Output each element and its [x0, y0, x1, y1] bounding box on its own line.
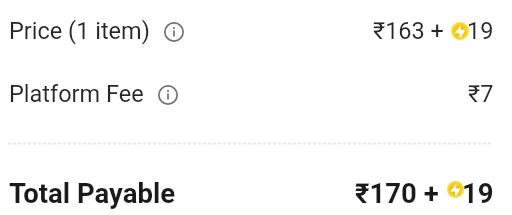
staticText: Price (1 item)	[9, 17, 150, 45]
other: More information	[164, 22, 184, 42]
button[interactable]: Platform Fee	[0, 62, 512, 126]
staticText: ₹163 +	[373, 17, 444, 45]
staticText: 19	[462, 177, 494, 209]
staticText: Platform Fee	[9, 80, 144, 108]
other: More information	[158, 85, 178, 105]
button[interactable]: Price (1 item)	[0, 0, 512, 62]
staticText: ₹7	[468, 80, 494, 108]
button[interactable]: Total Payable	[0, 164, 512, 215]
staticText: 19	[467, 17, 494, 45]
staticText: ₹170 +	[355, 177, 439, 209]
staticText: Total Payable	[9, 177, 176, 209]
